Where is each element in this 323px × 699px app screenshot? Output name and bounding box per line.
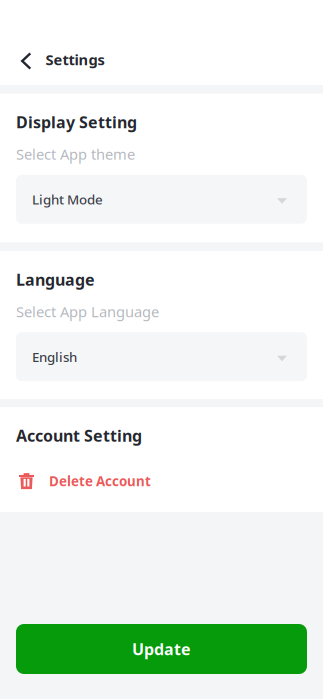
- staticText: Update: [132, 638, 191, 660]
- button[interactable]: Light Mode: [16, 175, 307, 224]
- staticText: English: [32, 348, 77, 366]
- staticText: Account Setting: [16, 425, 142, 446]
- staticText: Select App theme: [16, 144, 135, 164]
- button[interactable]: Settings: [0, 39, 118, 80]
- staticText: Select App Language: [16, 302, 159, 321]
- button[interactable]: Delete Account: [16, 464, 151, 498]
- button[interactable]: Update: [16, 624, 307, 674]
- staticText: Settings: [45, 50, 104, 69]
- staticText: Delete Account: [49, 472, 151, 490]
- staticText: Light Mode: [32, 190, 103, 208]
- staticText: Language: [16, 269, 95, 290]
- staticText: Display Setting: [16, 111, 137, 133]
- button[interactable]: English: [16, 332, 307, 381]
